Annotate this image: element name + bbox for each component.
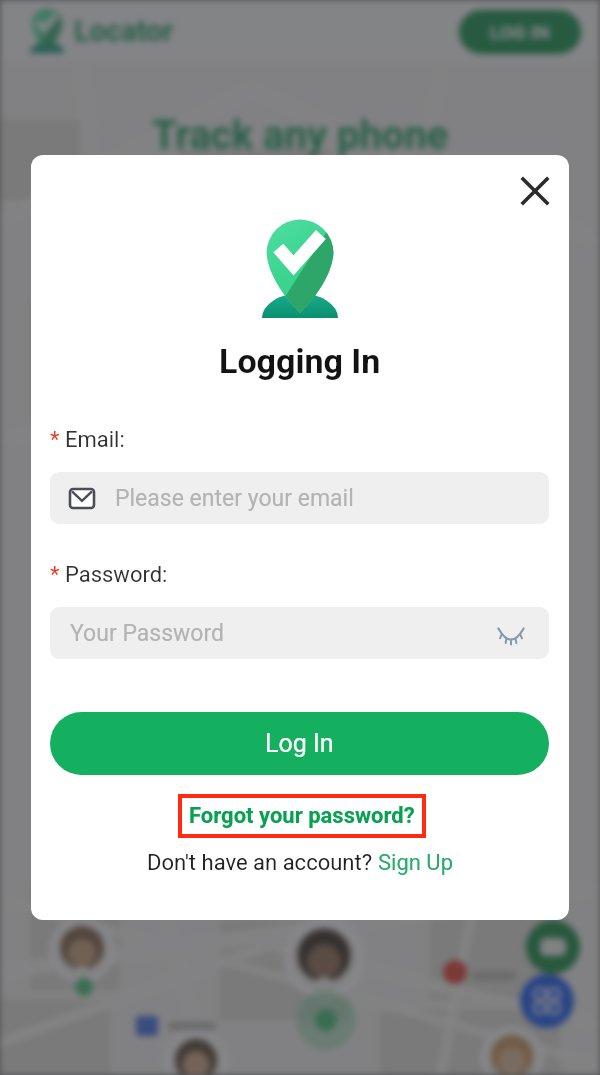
button[interactable]: Sign Up <box>378 850 453 876</box>
staticText: Don't have an account? <box>147 850 378 876</box>
button[interactable]: LOG IN <box>459 10 581 54</box>
button[interactable]: Log In <box>50 712 549 775</box>
button[interactable]: Your Password <box>50 607 549 659</box>
button[interactable]: Apps <box>520 974 574 1028</box>
staticText: * Password: <box>50 562 168 588</box>
button[interactable]: Please enter your email <box>50 472 549 524</box>
staticText: Sign Up <box>378 850 453 876</box>
staticText: Logging In <box>219 341 381 381</box>
staticText: Forgot your password? <box>189 803 415 829</box>
button[interactable]: Show password <box>495 617 527 649</box>
button[interactable]: Close <box>511 167 559 215</box>
staticText: LOG IN <box>490 21 550 43</box>
staticText: Your Password <box>70 620 224 647</box>
button[interactable]: Chat <box>526 920 580 974</box>
staticText: Log In <box>265 729 334 758</box>
staticText: * Email: <box>50 427 125 453</box>
staticText: Locator <box>74 14 174 48</box>
staticText: Track any phone <box>152 112 449 159</box>
staticText: Please enter your email <box>115 485 354 512</box>
button[interactable]: Forgot your password? <box>178 794 426 838</box>
